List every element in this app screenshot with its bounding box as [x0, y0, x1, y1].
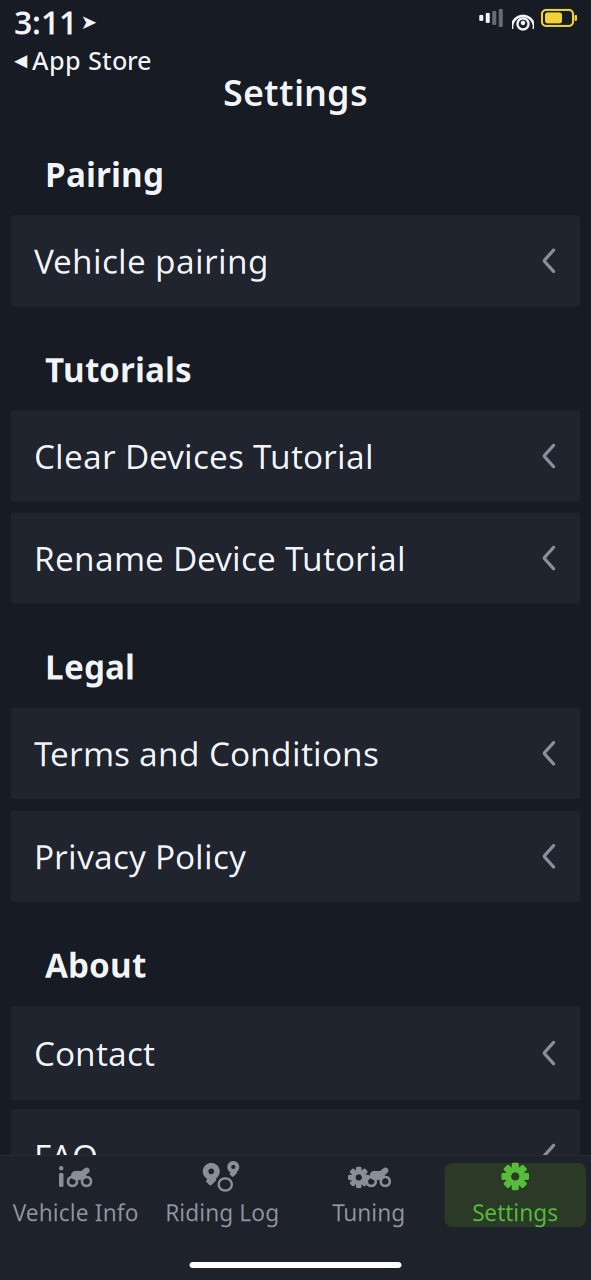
button[interactable]: FAQ [11, 1109, 580, 1203]
staticText: ➤ [80, 11, 97, 33]
button[interactable]: Terms and Conditions [11, 708, 580, 799]
staticText: ◀ [14, 50, 27, 70]
staticText: Tuning [332, 1197, 405, 1227]
staticText: About [45, 943, 146, 987]
staticText: Settings [472, 1197, 558, 1227]
staticText: Settings [223, 68, 368, 116]
button[interactable]: Clear Devices Tutorial [11, 410, 580, 501]
staticText: Tutorials [45, 347, 192, 392]
staticText: Clear Devices Tutorial [34, 434, 374, 478]
staticText: FAQ [34, 1134, 98, 1178]
staticText: Vehicle pairing [34, 239, 269, 283]
button[interactable]: Settings [444, 1163, 586, 1227]
button[interactable]: Rename Device Tutorial [11, 512, 580, 603]
staticText: Privacy Policy [34, 834, 246, 878]
staticText: Riding Log [165, 1197, 279, 1227]
button[interactable]: Tuning [298, 1163, 439, 1227]
staticText: Pairing [45, 152, 164, 196]
staticText: App Store [32, 43, 152, 77]
staticText: Vehicle Info [13, 1197, 139, 1227]
button[interactable]: Contact [11, 1006, 580, 1100]
button[interactable]: Vehicle pairing [11, 215, 580, 306]
staticText: Terms and Conditions [34, 731, 379, 775]
button[interactable]: Vehicle Info [5, 1163, 146, 1227]
staticText: Contact [34, 1031, 155, 1075]
staticText: Rename Device Tutorial [34, 536, 406, 580]
button[interactable]: Privacy Policy [11, 811, 580, 902]
staticText: 3:11 [14, 1, 77, 43]
button[interactable]: Riding Log [151, 1163, 293, 1227]
staticText: Legal [45, 644, 135, 689]
